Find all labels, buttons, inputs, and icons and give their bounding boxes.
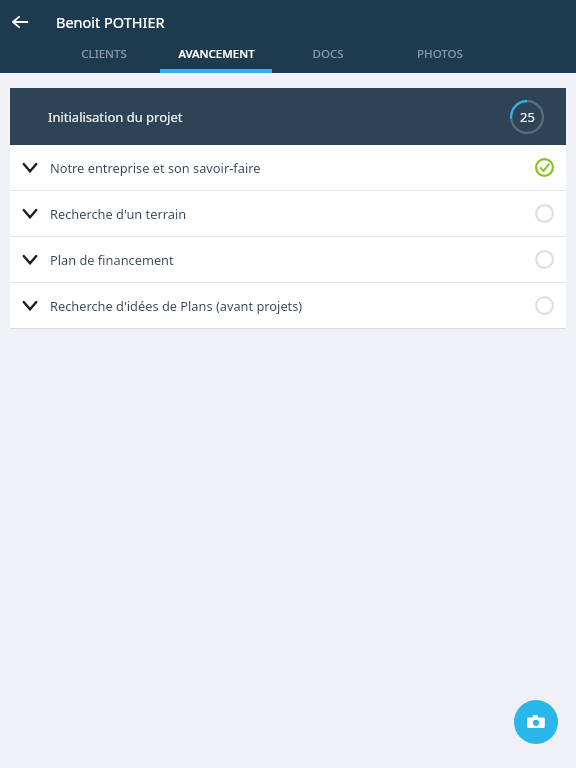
button[interactable]: Plan de financement <box>10 237 566 282</box>
button[interactable]: DOCS <box>272 40 384 73</box>
button[interactable]: Notre entreprise et son savoir-faire <box>10 145 566 190</box>
staticText: 25 <box>520 108 535 126</box>
button[interactable]: Take photo <box>514 700 558 744</box>
staticText: PHOTOS <box>417 46 463 62</box>
staticText: Initialisation du projet <box>48 108 183 126</box>
staticText: AVANCEMENT <box>178 46 255 62</box>
button[interactable]: AVANCEMENT <box>160 40 272 73</box>
button[interactable]: CLIENTS <box>48 40 160 73</box>
button[interactable]: Recherche d'idées de Plans (avant projet… <box>10 283 566 328</box>
staticText: CLIENTS <box>81 46 127 62</box>
staticText: Recherche d'idées de Plans (avant projet… <box>50 297 522 314</box>
button[interactable]: PHOTOS <box>384 40 496 73</box>
staticText: Benoit POTHIER <box>56 12 165 32</box>
staticText: Recherche d'un terrain <box>50 205 522 222</box>
button[interactable]: Recherche d'un terrain <box>10 191 566 236</box>
button[interactable]: Back <box>4 6 36 38</box>
staticText: Notre entreprise et son savoir-faire <box>50 159 522 176</box>
staticText: DOCS <box>312 46 344 62</box>
button[interactable]: Initialisation du projet <box>10 88 566 145</box>
staticText: Plan de financement <box>50 251 522 268</box>
